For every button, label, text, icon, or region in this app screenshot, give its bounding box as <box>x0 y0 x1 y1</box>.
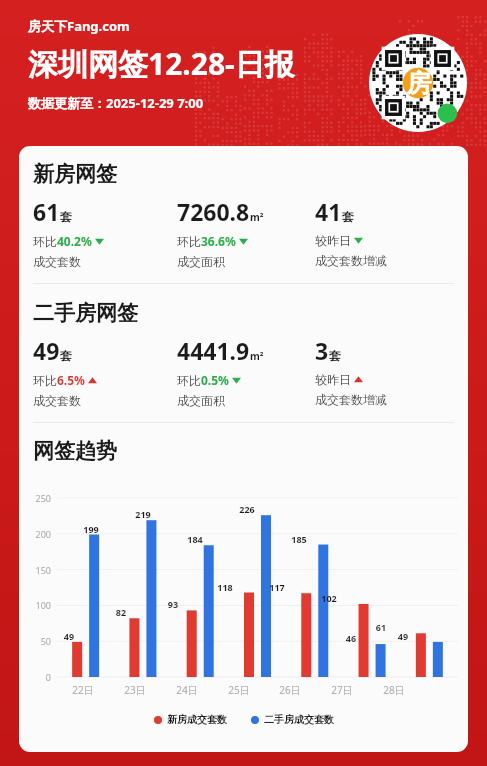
button[interactable]: 二手房网签 <box>33 300 468 326</box>
staticText: 102 <box>318 592 340 604</box>
staticText: 82 <box>110 606 132 618</box>
staticText: 较昨日 <box>315 372 351 387</box>
staticText: 网签趋势 <box>33 438 117 464</box>
staticText: 房 <box>406 68 431 99</box>
staticText: 199 <box>80 523 102 535</box>
staticText: 环比 <box>33 234 57 249</box>
staticText: 0 <box>19 671 51 683</box>
staticText: 二手房网签 <box>33 300 138 326</box>
staticText: 7260.8 <box>177 196 250 227</box>
button[interactable]: 4441.9 <box>177 335 315 408</box>
staticText: 成交面积 <box>177 393 225 408</box>
button[interactable]: 新房成交套数 <box>154 713 227 726</box>
staticText: 套 <box>342 209 354 224</box>
staticText: 49 <box>58 630 80 642</box>
staticText: 226 <box>236 503 258 515</box>
staticText: 22日 <box>69 683 97 697</box>
button[interactable]: 7260.8 <box>177 196 315 269</box>
staticText: 36.6% <box>201 233 236 249</box>
staticText: 4441.9 <box>177 335 250 366</box>
button[interactable]: 扫码二维码 <box>369 34 467 132</box>
staticText: 185 <box>288 533 310 545</box>
button[interactable]: 网签趋势 <box>33 438 468 464</box>
staticText: 100 <box>19 599 51 611</box>
staticText: 新房成交套数 <box>167 713 227 726</box>
staticText: 27日 <box>328 683 356 697</box>
staticText: 25日 <box>225 683 253 697</box>
button[interactable]: 61 <box>33 196 177 269</box>
staticText: 环比 <box>33 373 57 388</box>
staticText: 61 <box>33 196 60 227</box>
button[interactable]: 3 <box>315 335 468 407</box>
staticText: 成交套数 <box>33 254 81 269</box>
staticText: 250 <box>19 492 51 504</box>
staticText: 50 <box>19 635 51 647</box>
staticText: 二手房成交套数 <box>264 713 334 726</box>
staticText: 23日 <box>121 683 149 697</box>
staticText: 新房网签 <box>33 161 117 187</box>
staticText: 套 <box>329 348 341 363</box>
staticText: 49 <box>392 630 414 642</box>
staticText: 成交套数 <box>33 393 81 408</box>
staticText: 93 <box>162 598 184 610</box>
staticText: 200 <box>19 528 51 540</box>
button[interactable]: 49 <box>33 335 177 408</box>
button[interactable]: 新房网签 <box>33 161 468 187</box>
staticText: 150 <box>19 564 51 576</box>
staticText: 环比 <box>177 373 201 388</box>
staticText: 数据更新至：2025-12-29 7:00 <box>28 94 204 112</box>
staticText: 49 <box>33 335 60 366</box>
staticText: 较昨日 <box>315 233 351 248</box>
staticText: 3 <box>315 335 329 366</box>
staticText: 41 <box>315 196 342 227</box>
staticText: m² <box>250 210 264 224</box>
staticText: 184 <box>184 533 206 545</box>
staticText: 28日 <box>380 683 408 697</box>
staticText: 26日 <box>276 683 304 697</box>
staticText: 成交面积 <box>177 254 225 269</box>
staticText: 套 <box>60 348 72 363</box>
staticText: 40.2% <box>57 233 92 249</box>
staticText: 46 <box>340 632 362 644</box>
staticText: 219 <box>132 508 154 520</box>
staticText: 成交套数增减 <box>315 392 387 407</box>
staticText: 118 <box>214 581 236 593</box>
staticText: 环比 <box>177 234 201 249</box>
staticText: 0.5% <box>201 372 229 388</box>
staticText: 成交套数增减 <box>315 253 387 268</box>
staticText: 套 <box>60 209 72 224</box>
staticText: 61 <box>370 621 392 633</box>
staticText: 深圳网签12.28-日报 <box>28 43 295 84</box>
staticText: m² <box>250 349 264 363</box>
staticText: 房天下Fang.com <box>28 17 130 35</box>
staticText: 24日 <box>173 683 201 697</box>
button[interactable]: 二手房成交套数 <box>251 713 334 726</box>
staticText: 117 <box>266 581 288 593</box>
button[interactable]: 41 <box>315 196 468 268</box>
staticText: 6.5% <box>57 372 85 388</box>
